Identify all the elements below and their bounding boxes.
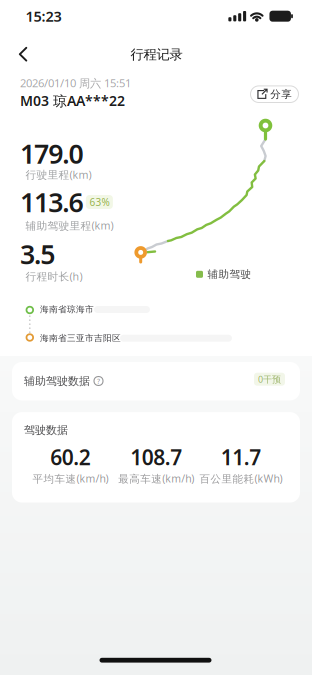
staticText: 11.7 xyxy=(221,443,261,471)
staticText: 60.2 xyxy=(50,443,91,471)
staticText: 行驶里程(km) xyxy=(25,167,91,182)
staticText: 驾驶数据 xyxy=(24,423,68,437)
button[interactable]: 返回 xyxy=(6,37,40,71)
staticText: 百公里能耗(kWh) xyxy=(199,471,282,485)
staticText: 辅助驾驶数据 xyxy=(24,374,90,388)
button[interactable]: 分享 xyxy=(250,85,299,103)
staticText: 分享 xyxy=(270,88,292,101)
staticText: 最高车速(km/h) xyxy=(118,471,194,485)
staticText: 海南省琼海市 xyxy=(40,304,94,315)
staticText: 海南省三亚市吉阳区 xyxy=(40,333,121,343)
staticText: 108.7 xyxy=(130,443,182,471)
button[interactable]: 辅助驾驶数据说明 xyxy=(93,376,103,386)
staticText: 辅助驾驶 xyxy=(207,268,251,281)
staticText: M03 琼AA***22 xyxy=(20,91,125,110)
staticText: 行程记录 xyxy=(130,46,182,63)
staticText: 3.5 xyxy=(20,236,55,272)
staticText: 63% xyxy=(89,195,109,209)
staticText: 辅助驾驶里程(km) xyxy=(25,218,113,232)
staticText: 2026/01/10 周六 15:51 xyxy=(20,76,131,90)
staticText: 平均车速(km/h) xyxy=(32,471,108,485)
staticText: 15:23 xyxy=(25,6,61,26)
staticText: 0干预 xyxy=(258,373,281,385)
staticText: ? xyxy=(97,376,100,386)
staticText: 行程时长(h) xyxy=(25,269,82,283)
staticText: 113.6 xyxy=(20,184,83,220)
staticText: 179.0 xyxy=(20,136,83,171)
